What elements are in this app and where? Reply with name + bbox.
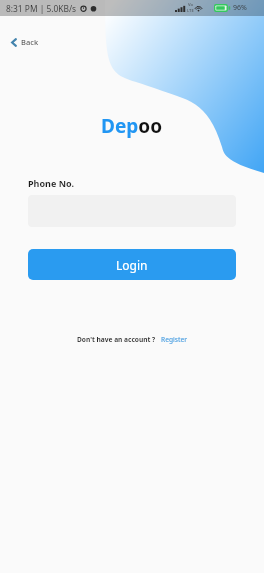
staticText: 96%	[233, 3, 247, 13]
staticText: Phone No.	[28, 177, 75, 189]
button[interactable]: Back	[7, 32, 43, 52]
staticText: Depoo	[101, 113, 163, 139]
staticText: Vo	[188, 2, 193, 8]
staticText: Don't have an account ?	[77, 335, 156, 344]
staticText: LTE	[187, 8, 194, 14]
staticText: Login	[116, 257, 148, 273]
staticText: Register	[161, 335, 188, 344]
staticText: 8:31 PM | 5.0KB/s	[6, 3, 77, 14]
staticText: Back	[21, 37, 39, 47]
button[interactable]: Register	[161, 335, 188, 344]
button[interactable]: Login	[28, 249, 236, 280]
